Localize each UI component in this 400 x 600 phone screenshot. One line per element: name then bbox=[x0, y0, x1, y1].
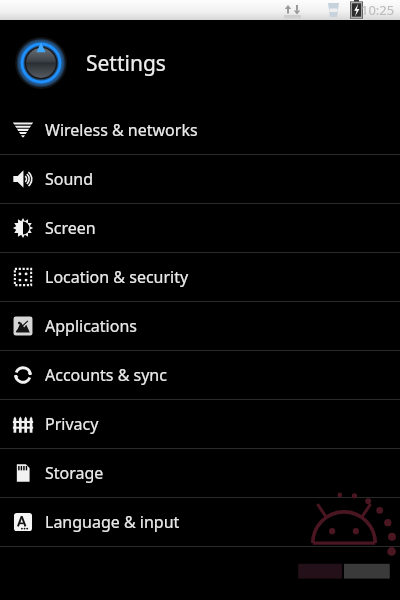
staticText: Privacy bbox=[45, 413, 99, 435]
button[interactable]: Settings app icon bbox=[0, 20, 400, 106]
button[interactable]: Applications bbox=[0, 302, 400, 350]
button[interactable]: Location & security bbox=[0, 253, 400, 301]
button[interactable]: Privacy bbox=[0, 400, 400, 448]
staticText: Wireless & networks bbox=[45, 119, 198, 141]
other: Settings app icon bbox=[14, 36, 68, 90]
staticText: Settings bbox=[86, 49, 166, 78]
staticText: Language & input bbox=[45, 511, 180, 533]
staticText: Screen bbox=[45, 217, 96, 239]
button[interactable]: Screen bbox=[0, 204, 400, 252]
button[interactable]: Accounts & sync bbox=[0, 351, 400, 399]
button[interactable]: Storage bbox=[0, 449, 400, 497]
staticText: Storage bbox=[45, 462, 104, 484]
staticText: Location & security bbox=[45, 266, 189, 288]
button[interactable]: Wireless & networks bbox=[0, 106, 400, 154]
staticText: Applications bbox=[45, 315, 137, 337]
staticText: Accounts & sync bbox=[45, 364, 167, 386]
staticText: Sound bbox=[45, 168, 94, 190]
button[interactable]: Sound bbox=[0, 155, 400, 203]
button[interactable]: Language & input bbox=[0, 498, 400, 546]
staticText: 10:25 bbox=[361, 1, 395, 19]
